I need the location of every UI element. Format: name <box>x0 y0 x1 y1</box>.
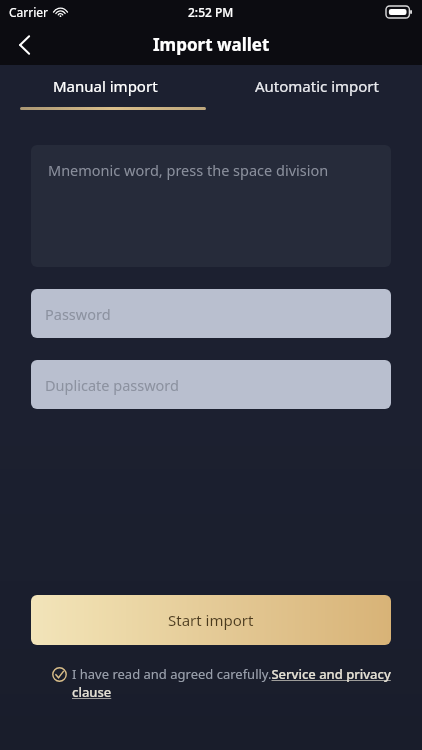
staticText: Automatic import <box>255 76 379 96</box>
button[interactable]: Duplicate password <box>31 360 391 409</box>
button[interactable]: I have read and agreed carefully.Service… <box>52 665 394 701</box>
staticText: Password <box>45 304 111 324</box>
staticText: Start import <box>168 610 254 630</box>
staticText: Duplicate password <box>45 375 179 395</box>
staticText: 2:52 PM <box>188 4 234 20</box>
button[interactable]: Mnemonic word, press the space division <box>31 145 391 267</box>
button[interactable]: Automatic import <box>211 76 422 125</box>
button[interactable]: Back <box>0 24 48 65</box>
button[interactable]: Manual import <box>0 76 211 125</box>
button[interactable]: Password <box>31 289 391 338</box>
button[interactable]: Start import <box>31 595 391 645</box>
staticText: Import wallet <box>153 33 270 56</box>
staticText: Mnemonic word, press the space division <box>48 160 329 180</box>
staticText: I have read and agreed carefully.Service… <box>72 665 394 701</box>
staticText: Manual import <box>53 76 158 96</box>
staticText: Carrier <box>9 4 49 20</box>
